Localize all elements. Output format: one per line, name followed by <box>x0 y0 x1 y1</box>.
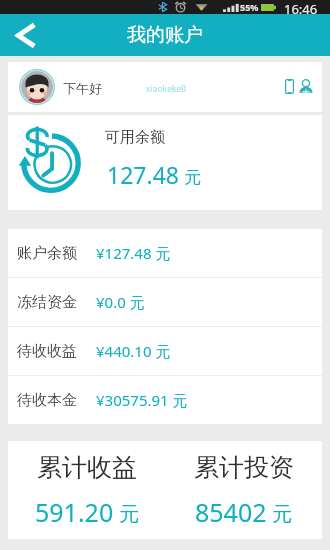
staticText: 累计投资 <box>194 452 294 483</box>
button[interactable]: 待收本金 <box>8 376 322 424</box>
button[interactable]: Phone <box>285 79 294 94</box>
staticText: 16:46 <box>284 0 318 14</box>
staticText: 85402 <box>195 495 267 529</box>
staticText: ¥127.48 元 <box>96 243 171 263</box>
staticText: 账户余额 <box>17 244 77 263</box>
staticText: 127.48 <box>107 159 179 190</box>
staticText: 待收本金 <box>17 391 77 410</box>
button[interactable]: Back <box>0 14 52 56</box>
button[interactable]: 账户余额 <box>8 229 322 277</box>
staticText: 冻结资金 <box>17 293 77 312</box>
staticText: xiaokeke0 <box>146 83 187 95</box>
staticText: ¥30575.91 元 <box>96 390 188 410</box>
staticText: 55% <box>240 1 259 13</box>
staticText: 元 <box>184 167 201 188</box>
button[interactable]: 可用余额 <box>8 115 322 210</box>
staticText: 累计收益 <box>37 452 137 483</box>
staticText: 待收收益 <box>17 342 77 361</box>
staticText: 元 <box>119 502 139 527</box>
button[interactable]: 待收收益 <box>8 327 322 375</box>
button[interactable]: 累计收益 <box>8 452 165 529</box>
staticText: 元 <box>272 502 292 527</box>
staticText: 下午好 <box>63 80 102 96</box>
staticText: 我的账户 <box>127 23 203 47</box>
button[interactable]: Profile <box>299 79 313 94</box>
staticText: 可用余额 <box>105 128 165 147</box>
button[interactable]: 累计投资 <box>165 452 322 529</box>
staticText: ¥0.0 元 <box>96 292 145 312</box>
button[interactable]: 冻结资金 <box>8 278 322 326</box>
button[interactable]: 下午好 <box>8 62 322 112</box>
staticText: 591.20 <box>35 495 114 529</box>
staticText: ¥440.10 元 <box>96 341 171 361</box>
